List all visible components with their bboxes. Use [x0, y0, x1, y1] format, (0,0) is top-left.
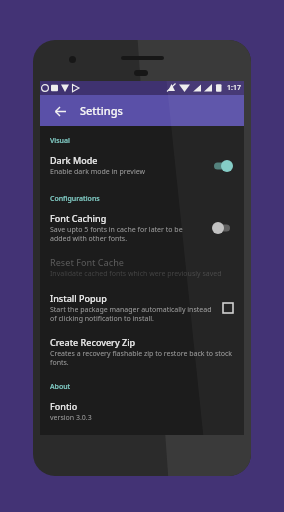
button[interactable]: Toggle on — [210, 158, 236, 174]
staticText: Fontio — [50, 400, 78, 412]
button[interactable]: Font Caching — [40, 207, 244, 247]
button[interactable]: Ashish Shekar — [40, 431, 244, 435]
staticText: Reset Font Cache — [50, 256, 124, 268]
staticText: Visual — [50, 136, 70, 146]
button[interactable]: Install Popup — [40, 287, 244, 327]
staticText: version 3.0.3 — [50, 413, 92, 423]
staticText: Save upto 5 fonts in cache for later to … — [50, 225, 204, 243]
staticText: Configurations — [50, 194, 100, 204]
button[interactable]: Dark Mode — [40, 149, 244, 181]
button[interactable]: Toggle off — [210, 220, 236, 236]
staticText: Start the package manager automatically … — [50, 305, 214, 323]
button: Reset Font Cache — [40, 251, 244, 283]
staticText: Settings — [80, 103, 123, 118]
staticText: Create Recovery Zip — [50, 336, 136, 348]
staticText: Creates a recovery flashable zip to rest… — [50, 349, 236, 367]
staticText: Install Popup — [50, 292, 107, 304]
button[interactable]: Install Popup checkbox — [220, 300, 236, 316]
button[interactable]: Create Recovery Zip — [40, 331, 244, 371]
button[interactable]: Fontio — [40, 395, 244, 427]
staticText: Enable dark mode in preview — [50, 167, 146, 177]
staticText: Dark Mode — [50, 154, 98, 166]
staticText: Invalidate cached fonts which were previ… — [50, 269, 222, 279]
staticText: About — [50, 382, 71, 392]
button[interactable]: Back — [49, 100, 71, 122]
staticText: Font Caching — [50, 212, 107, 224]
staticText: 1:17 — [227, 83, 241, 93]
